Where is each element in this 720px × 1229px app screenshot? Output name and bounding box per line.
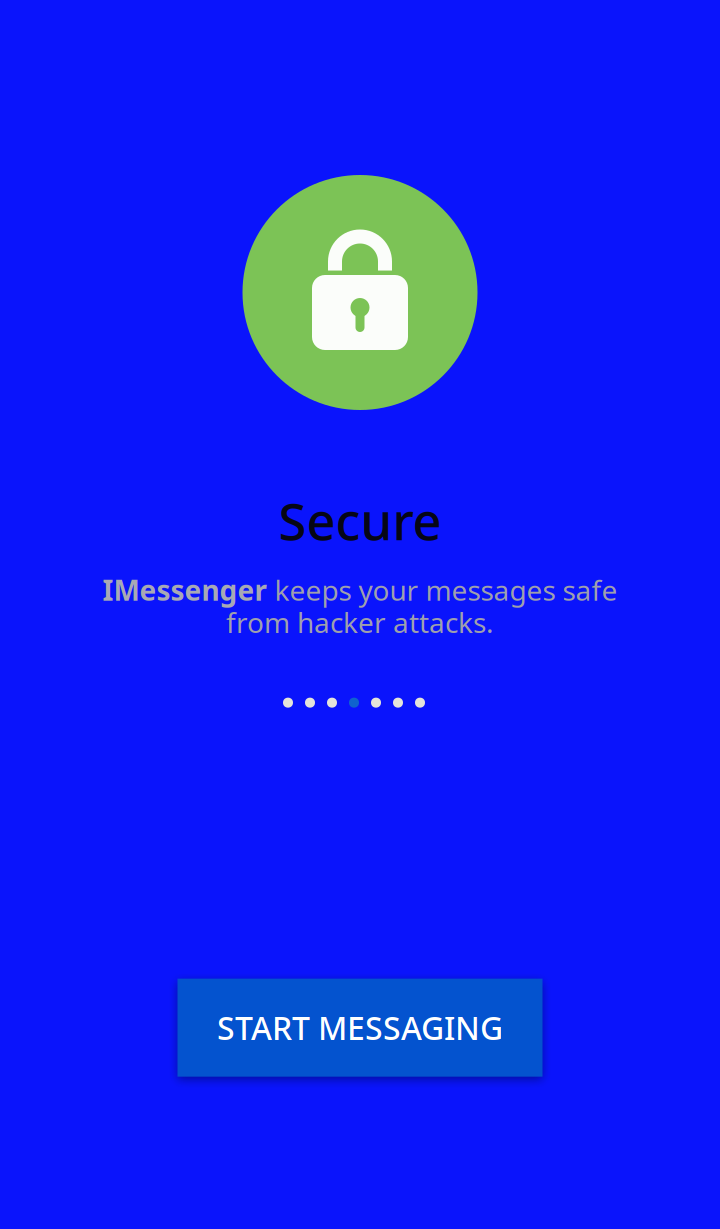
staticText: Secure — [278, 487, 441, 554]
button[interactable]: Page 1 — [283, 698, 293, 708]
button[interactable]: Page 5 — [371, 698, 381, 708]
button[interactable]: Page 4 — [349, 698, 359, 708]
button[interactable]: Page 7 — [415, 698, 425, 708]
button[interactable]: START MESSAGING — [177, 979, 542, 1077]
staticText: START MESSAGING — [217, 1006, 503, 1049]
staticText: IMessenger — [102, 571, 267, 608]
button[interactable]: Page 3 — [327, 698, 337, 708]
staticText: keeps your messages safe — [267, 571, 617, 608]
staticText: from hacker attacks. — [226, 603, 494, 641]
button[interactable]: Page 2 — [305, 698, 315, 708]
button[interactable]: Page 6 — [393, 698, 403, 708]
